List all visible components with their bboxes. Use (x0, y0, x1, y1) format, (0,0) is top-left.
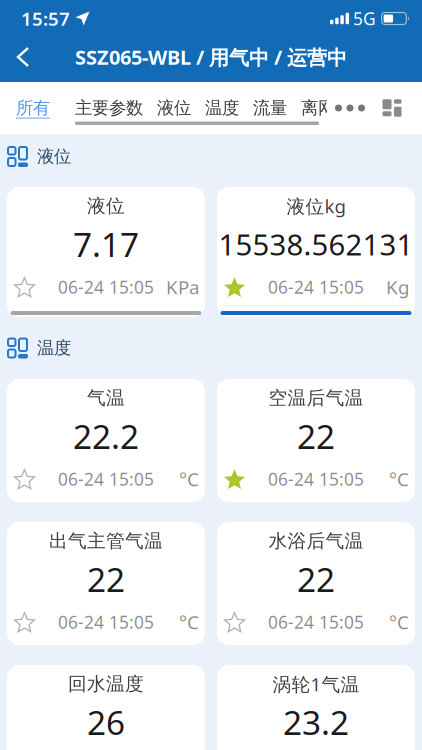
staticText: 7.17 (73, 222, 139, 266)
staticText: 空温后气温 (268, 386, 363, 409)
button[interactable]: 出气主管气温 (7, 522, 205, 645)
staticText: 流量 (253, 97, 287, 119)
button[interactable]: 空温后气温 (217, 379, 415, 502)
button[interactable]: More (335, 104, 365, 111)
button[interactable]: 液位 (7, 187, 205, 317)
button[interactable]: 所有 (0, 97, 50, 119)
button[interactable]: 液位kg (217, 187, 415, 317)
staticText: 06-24 15:05 (58, 275, 154, 298)
button[interactable]: 水浴后气温 (217, 522, 415, 645)
staticText: 06-24 15:05 (268, 610, 364, 633)
button[interactable]: Back (0, 33, 30, 81)
staticText: 温度 (205, 97, 239, 119)
button[interactable]: 回水温度 (7, 665, 205, 750)
staticText: 22 (297, 414, 335, 458)
button[interactable]: Favorite (13, 611, 35, 633)
staticText: 液位 (157, 97, 191, 119)
button[interactable]: 流量 (239, 97, 287, 119)
staticText: °C (179, 467, 199, 491)
staticText: 液位 (37, 146, 71, 167)
staticText: 06-24 15:05 (58, 610, 154, 633)
staticText: 液位kg (286, 194, 345, 218)
staticText: 主要参数 (75, 97, 143, 119)
staticText: 22.2 (73, 414, 139, 458)
staticText: 22 (297, 557, 335, 601)
button[interactable]: Favorite (223, 611, 245, 633)
staticText: 涡轮1气温 (272, 672, 359, 696)
staticText: 06-24 15:05 (268, 275, 364, 298)
staticText: 水浴后气温 (268, 529, 363, 552)
staticText: °C (179, 610, 199, 634)
button[interactable]: 主要参数 (50, 97, 143, 119)
staticText: 22 (87, 557, 125, 601)
button[interactable]: 离网 (287, 97, 335, 119)
staticText: 5G (353, 7, 376, 30)
staticText: 回水温度 (68, 672, 144, 695)
staticText: 所有 (16, 97, 50, 119)
button[interactable]: Favorite (223, 276, 245, 298)
button[interactable]: Favorite (13, 468, 35, 490)
staticText: 26 (87, 700, 125, 744)
button[interactable]: 涡轮1气温 (217, 665, 415, 750)
button[interactable]: Favorite (223, 468, 245, 490)
button[interactable]: 温度 (191, 97, 239, 119)
staticText: SSZ065-WBL / 用气中 / 运营中 (75, 44, 347, 70)
staticText: 15:57 (21, 6, 70, 31)
button[interactable]: Layout (365, 99, 401, 117)
staticText: 温度 (37, 337, 71, 359)
button[interactable]: 液位 (143, 97, 191, 119)
staticText: 06-24 15:05 (268, 467, 364, 490)
staticText: °C (389, 467, 409, 491)
staticText: 06-24 15:05 (58, 467, 154, 490)
staticText: Kg (386, 275, 409, 299)
staticText: 液位 (87, 194, 125, 217)
staticText: 23.2 (283, 700, 349, 744)
button[interactable]: 气温 (7, 379, 205, 502)
staticText: 15538.562131 (218, 224, 413, 263)
staticText: °C (389, 610, 409, 634)
button[interactable]: Favorite (13, 276, 35, 298)
staticText: 气温 (87, 386, 125, 409)
staticText: KPa (166, 275, 199, 299)
staticText: 离网 (301, 97, 335, 119)
staticText: 出气主管气温 (49, 529, 163, 552)
